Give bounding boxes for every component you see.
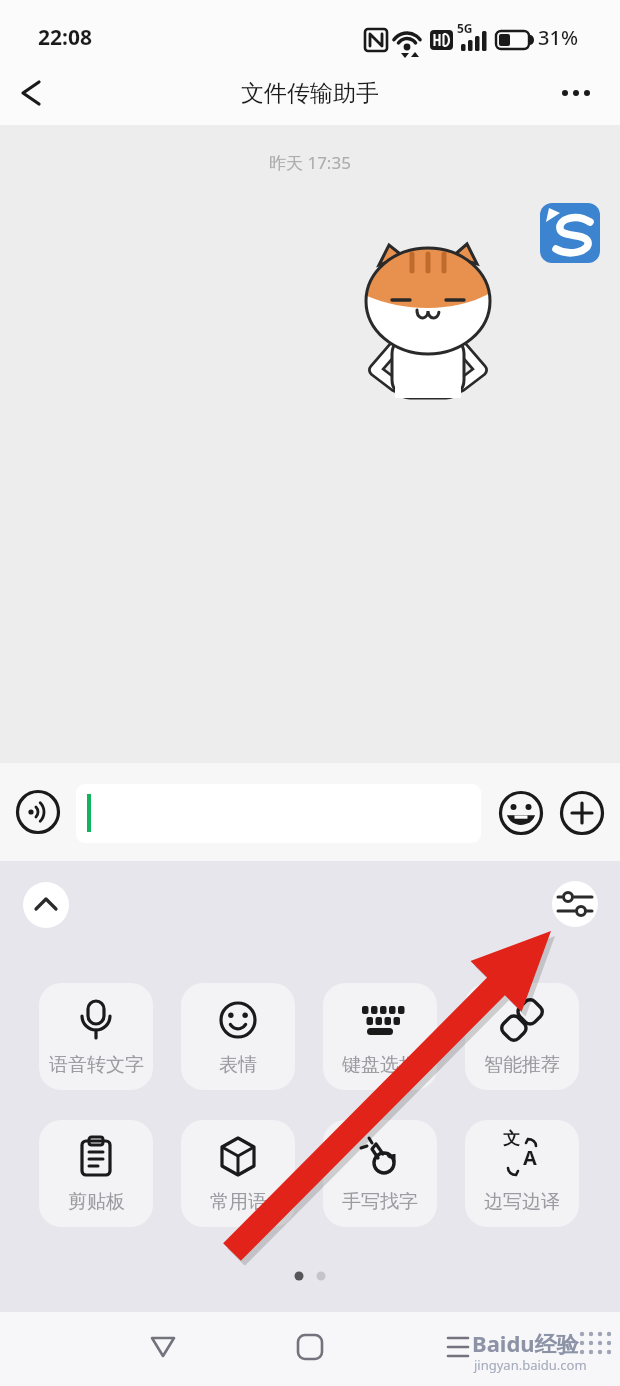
- staticText: Baidu经验: [472, 1328, 579, 1358]
- staticText: A: [523, 1144, 537, 1171]
- staticText: 31%: [538, 24, 578, 51]
- button[interactable]: [76, 784, 481, 843]
- staticText: jingyan.baidu.com: [474, 1356, 587, 1374]
- staticText: 文件传输助手: [241, 79, 379, 108]
- button[interactable]: [16, 790, 60, 834]
- staticText: 剪贴板: [68, 1190, 125, 1214]
- button[interactable]: 剪贴板: [39, 1120, 153, 1227]
- button[interactable]: [433, 1322, 483, 1372]
- button[interactable]: [23, 882, 69, 928]
- button[interactable]: [285, 1322, 335, 1372]
- staticText: 文: [503, 1128, 520, 1149]
- staticText: 表情: [219, 1053, 257, 1077]
- button[interactable]: [540, 203, 600, 263]
- staticText: 手写找字: [342, 1190, 418, 1214]
- staticText: 5G: [457, 20, 473, 36]
- button[interactable]: 边写边译: [465, 1120, 579, 1227]
- staticText: 边写边译: [484, 1190, 560, 1214]
- button[interactable]: [499, 791, 543, 835]
- button[interactable]: [548, 70, 604, 116]
- button[interactable]: [8, 70, 54, 116]
- staticText: 智能推荐: [484, 1053, 560, 1077]
- staticText: 22:08: [38, 23, 92, 52]
- staticText: 昨天 17:35: [269, 151, 351, 174]
- button[interactable]: 常用语: [181, 1120, 295, 1227]
- button[interactable]: 表情: [181, 983, 295, 1090]
- button[interactable]: 键盘选择: [323, 983, 437, 1090]
- button[interactable]: 智能推荐: [465, 983, 579, 1090]
- staticText: 常用语: [210, 1190, 267, 1214]
- staticText: 键盘选择: [342, 1053, 418, 1077]
- button[interactable]: [552, 881, 598, 927]
- staticText: 语音转文字: [49, 1053, 144, 1077]
- button[interactable]: 手写找字: [323, 1120, 437, 1227]
- button[interactable]: [138, 1322, 188, 1372]
- button[interactable]: [560, 791, 604, 835]
- button[interactable]: 语音转文字: [39, 983, 153, 1090]
